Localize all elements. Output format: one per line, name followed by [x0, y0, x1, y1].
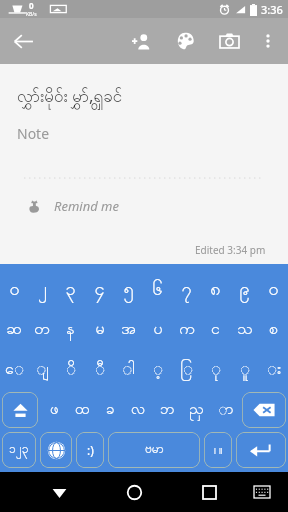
button[interactable]: ့ [143, 350, 172, 390]
staticText: ဆ [6, 318, 22, 342]
button[interactable]: ၆ [143, 270, 172, 310]
staticText: သ [237, 318, 253, 342]
button[interactable]: ု [201, 350, 230, 390]
staticText: ၁၂၃ [9, 441, 29, 459]
staticText: ျ [36, 358, 49, 382]
button[interactable]: င [201, 310, 230, 350]
staticText: မ [95, 318, 105, 342]
button[interactable]: ဘ [153, 390, 182, 430]
staticText: 0 [29, 0, 34, 11]
staticText: စ [269, 318, 278, 342]
staticText: ဘ [160, 399, 175, 421]
button[interactable]: ါ [114, 350, 143, 390]
staticText: ါ [122, 358, 135, 382]
staticText: ၀ [268, 277, 279, 304]
staticText: ခ [106, 399, 115, 421]
staticText: ့ [153, 358, 163, 382]
button[interactable]: ျ [28, 350, 56, 390]
button[interactable]: More options [251, 24, 285, 58]
staticText: ု [211, 358, 221, 382]
staticText: ိ [66, 358, 76, 382]
button[interactable]: Back [39, 472, 79, 512]
staticText: ၂ [38, 277, 47, 304]
staticText: အ [121, 318, 136, 342]
button[interactable]: ၇ [172, 270, 201, 310]
staticText: ပ [153, 318, 163, 342]
button[interactable]: Back [0, 18, 46, 64]
button[interactable]: ပ [143, 310, 172, 350]
staticText: က [179, 318, 195, 342]
button[interactable]: ူ [230, 350, 259, 390]
button[interactable]: ိ [56, 350, 85, 390]
staticText: ထ [75, 399, 90, 421]
button[interactable]: ဝ [0, 270, 28, 310]
staticText: ီ [95, 358, 105, 382]
staticText: တ [34, 318, 50, 342]
button[interactable]: ၃ [56, 270, 85, 310]
button[interactable]: ြ [172, 350, 201, 390]
button[interactable]: း [259, 350, 288, 390]
button[interactable]: ခ [96, 390, 124, 430]
button[interactable]: Switch keyboard [245, 475, 279, 509]
button[interactable]: Emoji [76, 432, 104, 468]
button[interactable]: Enter [236, 432, 286, 468]
button[interactable]: စ [259, 310, 288, 350]
button[interactable]: ီ [85, 350, 114, 390]
button[interactable]: Recent apps [189, 472, 229, 512]
staticText: ၈ [210, 277, 221, 304]
staticText: န [66, 318, 75, 342]
button[interactable]: ဖ [40, 390, 68, 430]
button[interactable]: သ [230, 310, 259, 350]
staticText: ၅ [123, 277, 134, 304]
staticText: 3:36 [261, 2, 283, 17]
staticText: ၇ [181, 277, 192, 304]
staticText: ၉ [239, 277, 250, 304]
button[interactable]: လ [124, 390, 153, 430]
button[interactable]: Change color [163, 19, 207, 63]
button[interactable]: ၂ [28, 270, 56, 310]
staticText: ဗမာ [145, 441, 164, 459]
staticText: :) [87, 442, 94, 458]
button[interactable]: ထ [68, 390, 96, 430]
staticText: Remind me [54, 197, 119, 215]
staticText: ာ [218, 399, 234, 421]
button[interactable]: အ [114, 310, 143, 350]
staticText: ဖ [50, 399, 59, 421]
button[interactable]: ဆ [0, 310, 28, 350]
button[interactable]: က [172, 310, 201, 350]
button[interactable]: မ [85, 310, 114, 350]
button[interactable]: Change language [40, 432, 72, 468]
button[interactable]: န [56, 310, 85, 350]
button[interactable]: ေ [0, 350, 28, 390]
button[interactable]: ညှ [182, 390, 211, 430]
button[interactable]: Shift [2, 392, 38, 428]
button[interactable]: ၅ [114, 270, 143, 310]
button[interactable]: Camera [207, 19, 251, 63]
staticText: ူ [240, 358, 250, 382]
button[interactable]: Add collaborator [119, 19, 163, 63]
button[interactable]: ၈ [201, 270, 230, 310]
button[interactable]: Symbols [2, 432, 36, 468]
staticText: Note [17, 124, 50, 143]
button[interactable]: ၉ [230, 270, 259, 310]
staticText: း [267, 358, 281, 382]
staticText: လွှာ်းမိုဝ်း မွှာ်,ၡွခင် [17, 84, 123, 110]
staticText: ၄ [94, 277, 105, 304]
staticText: လ [131, 399, 146, 421]
button[interactable]: ၀ [259, 270, 288, 310]
staticText: Edited 3:34 pm [195, 243, 266, 257]
button[interactable]: Space [108, 432, 200, 468]
button[interactable]: Remind me [0, 191, 288, 221]
button[interactable]: Punctuation [204, 432, 232, 468]
staticText: ၃ [65, 277, 76, 304]
button[interactable]: Home [114, 472, 154, 512]
button[interactable]: Backspace [242, 392, 286, 428]
button[interactable]: တ [28, 310, 56, 350]
staticText: ဝ [9, 277, 20, 304]
button[interactable]: ၄ [85, 270, 114, 310]
button[interactable]: ာ [211, 390, 240, 430]
staticText: င [211, 318, 220, 342]
staticText: ၆ [152, 277, 163, 304]
staticText: KB/s [26, 11, 37, 18]
staticText: ၊ ။ [214, 441, 223, 460]
